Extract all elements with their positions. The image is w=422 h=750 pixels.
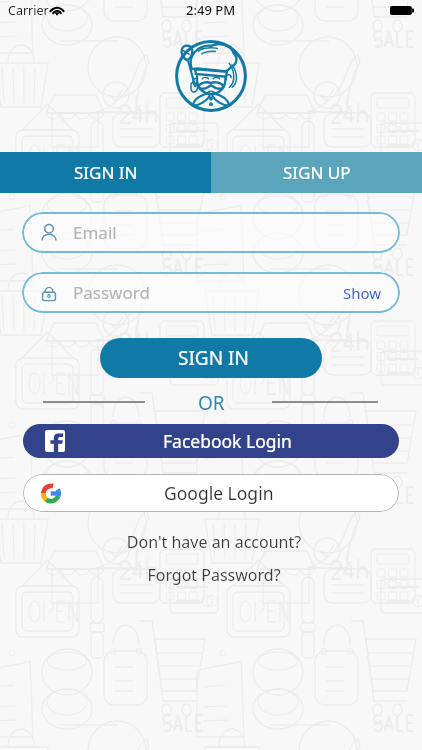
button[interactable]: SIGN UP bbox=[211, 152, 422, 193]
button[interactable]: Google Login bbox=[23, 474, 399, 512]
staticText: Carrier bbox=[8, 2, 49, 19]
staticText: 2:49 PM bbox=[186, 1, 236, 19]
staticText: SIGN IN bbox=[74, 161, 138, 184]
staticText: Email bbox=[73, 221, 382, 244]
button[interactable]: Email bbox=[22, 212, 400, 253]
button[interactable]: Don't have an account? bbox=[3, 531, 422, 553]
staticText: Password bbox=[73, 281, 343, 304]
button[interactable]: SIGN IN bbox=[0, 152, 211, 193]
staticText: SIGN IN bbox=[178, 345, 249, 371]
staticText: OR bbox=[198, 390, 225, 412]
staticText: Facebook Login bbox=[163, 429, 292, 453]
button[interactable]: Forgot Password? bbox=[3, 564, 422, 586]
staticText: SIGN UP bbox=[283, 161, 351, 184]
staticText: Google Login bbox=[164, 481, 274, 505]
button[interactable]: Show bbox=[343, 283, 382, 303]
button[interactable]: Password bbox=[22, 272, 400, 313]
button[interactable]: SIGN IN bbox=[100, 338, 322, 378]
button[interactable]: Facebook Login bbox=[23, 424, 399, 458]
